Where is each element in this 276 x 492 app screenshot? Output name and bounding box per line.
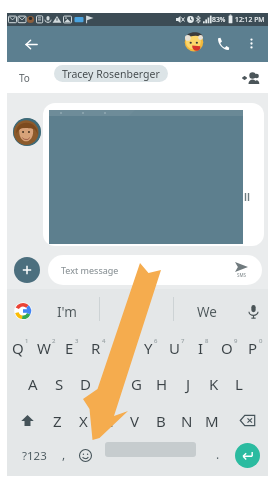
button[interactable]: K: [201, 372, 227, 396]
staticText: V: [130, 411, 140, 431]
staticText: 12:12 PM: [235, 15, 265, 24]
button[interactable]: Voice input: [243, 300, 263, 324]
staticText: 9: [234, 337, 238, 345]
staticText: 83%: [212, 15, 226, 24]
button[interactable]: We: [183, 297, 231, 327]
staticText: 3: [75, 337, 79, 345]
staticText: Z: [53, 411, 62, 431]
staticText: S: [55, 374, 64, 394]
button[interactable]: Back: [13, 26, 49, 62]
staticText: .: [216, 446, 220, 462]
button[interactable]: Tracey Rosenberger: [54, 65, 168, 82]
button[interactable]: V: [122, 409, 148, 433]
button[interactable]: I'm: [41, 297, 93, 327]
staticText: 0: [259, 337, 263, 345]
staticText: 8: [205, 337, 209, 345]
button[interactable]: Emoji keyboard: [73, 443, 97, 468]
button[interactable]: B: [148, 409, 174, 433]
staticText: 4: [102, 337, 106, 345]
button[interactable]: U: [164, 336, 190, 360]
staticText: K: [209, 374, 219, 394]
staticText: D: [80, 374, 91, 394]
button[interactable]: ?123: [15, 443, 53, 468]
button[interactable]: Add attachment: [14, 257, 40, 283]
staticText: ,: [62, 446, 66, 462]
button[interactable]: C: [96, 409, 122, 433]
staticText: Tracey Rosenberger: [62, 67, 160, 81]
button[interactable]: F: [97, 372, 123, 396]
button[interactable]: O: [216, 336, 242, 360]
staticText: ?123: [22, 448, 47, 464]
button[interactable]: S: [46, 372, 72, 396]
staticText: J: [186, 374, 191, 394]
button[interactable]: Z: [44, 409, 70, 433]
staticText: R: [91, 338, 101, 358]
button[interactable]: More options: [240, 32, 262, 54]
button[interactable]: X: [70, 409, 96, 433]
button[interactable]: Shift: [14, 408, 40, 433]
button[interactable]: A: [20, 372, 46, 396]
button[interactable]: E: [59, 336, 85, 360]
staticText: To: [19, 71, 30, 85]
button[interactable]: H: [149, 372, 175, 396]
staticText: B: [156, 411, 166, 431]
staticText: 1: [25, 337, 29, 345]
button[interactable]: Q: [7, 336, 33, 360]
staticText: E: [65, 338, 74, 358]
staticText: U: [169, 338, 180, 358]
staticText: A: [28, 374, 38, 394]
staticText: L: [235, 374, 243, 394]
button[interactable]: [43, 103, 264, 246]
button[interactable]: J: [175, 372, 201, 396]
staticText: 6: [154, 337, 158, 345]
button[interactable]: T: [111, 336, 137, 360]
staticText: C: [104, 411, 114, 431]
button[interactable]: D: [72, 372, 98, 396]
staticText: O: [221, 338, 233, 358]
staticText: X: [79, 411, 88, 431]
staticText: SMS: [237, 272, 247, 278]
button[interactable]: Backspace: [234, 408, 260, 433]
button[interactable]: L: [226, 372, 252, 396]
button[interactable]: M: [199, 409, 225, 433]
button[interactable]: Contact emoji: [183, 30, 205, 52]
button[interactable]: P: [242, 336, 268, 360]
staticText: W: [37, 338, 51, 358]
staticText: H: [156, 374, 168, 394]
staticText: G: [131, 374, 142, 394]
staticText: 7: [181, 337, 185, 345]
button[interactable]: Y: [138, 336, 164, 360]
button[interactable]: W: [33, 336, 59, 360]
staticText: Y: [144, 338, 153, 358]
button[interactable]: Text message: [48, 255, 262, 285]
button[interactable]: Call: [211, 32, 233, 54]
staticText: We: [197, 303, 217, 321]
staticText: P: [248, 338, 258, 358]
button[interactable]: G: [123, 372, 149, 396]
staticText: I'm: [57, 303, 77, 321]
staticText: I: [198, 338, 204, 358]
button[interactable]: Sender avatar: [13, 118, 41, 146]
button[interactable]: I: [190, 336, 216, 360]
staticText: 2: [52, 337, 56, 345]
staticText: Text message: [61, 264, 119, 276]
staticText: Q: [12, 338, 24, 358]
staticText: M: [205, 411, 219, 431]
button[interactable]: R: [85, 336, 111, 360]
button[interactable]: Enter: [235, 443, 260, 468]
button[interactable]: Google search: [14, 302, 32, 320]
button[interactable]: Add recipient: [239, 67, 261, 89]
staticText: N: [181, 411, 193, 431]
button[interactable]: N: [174, 409, 200, 433]
button[interactable]: ,: [53, 443, 75, 468]
button[interactable]: .: [207, 443, 229, 468]
